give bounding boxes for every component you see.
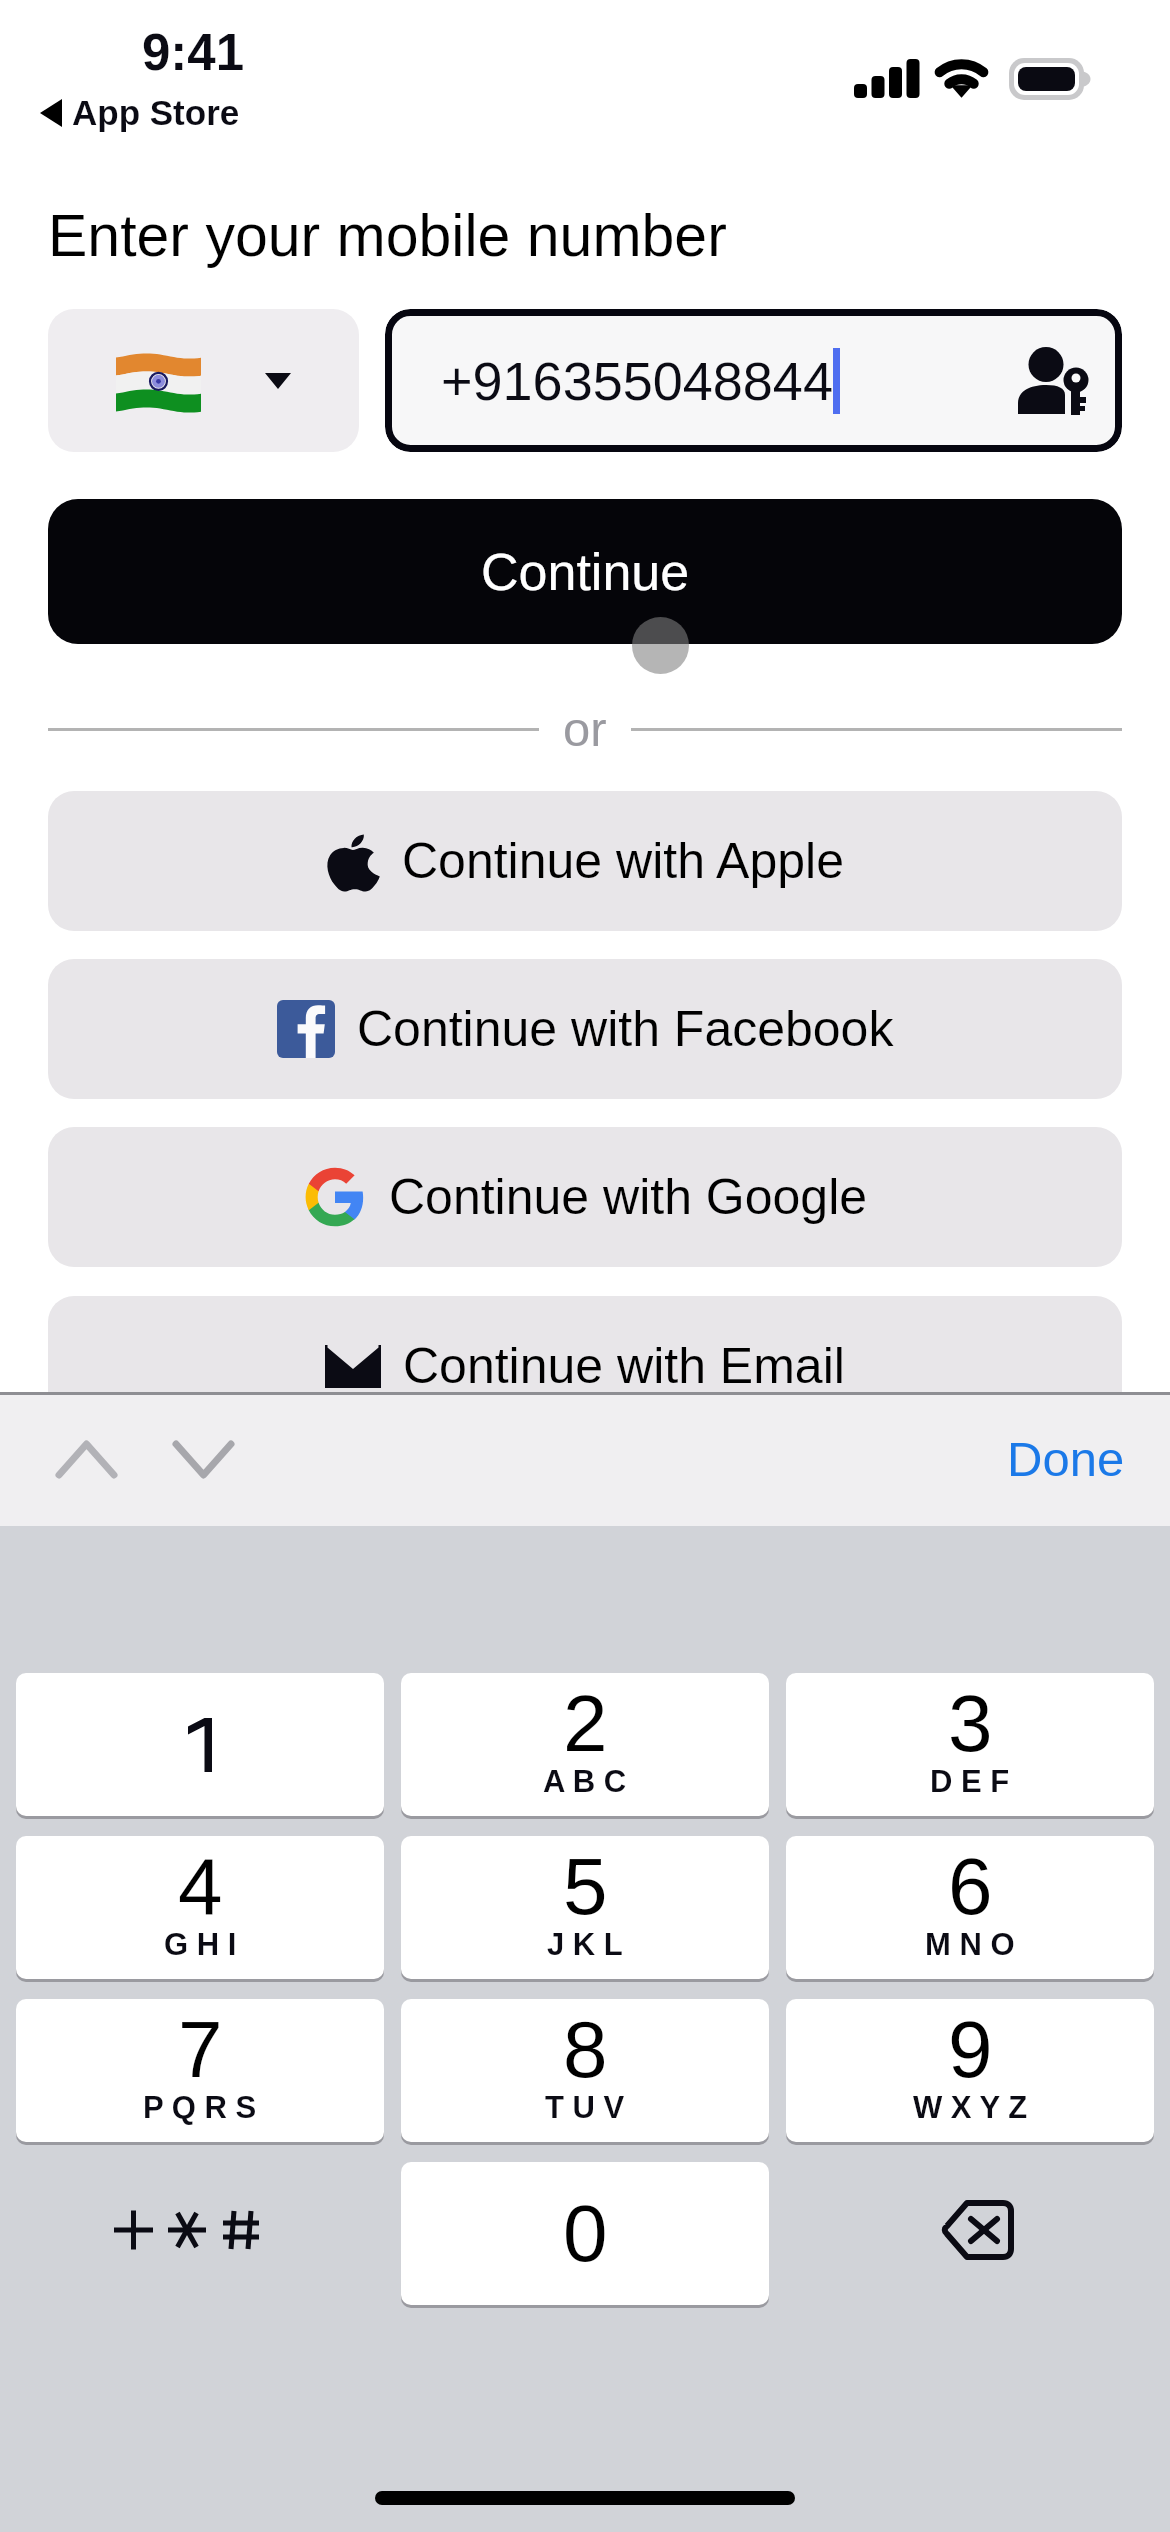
- staticText: M N O: [925, 1927, 1015, 1962]
- staticText: 4: [178, 1842, 223, 1931]
- staticText: Enter your mobile number: [48, 203, 727, 269]
- staticText: Done: [1007, 1432, 1125, 1487]
- staticText: W X Y Z: [913, 2090, 1028, 2125]
- button[interactable]: Continue with Email: [48, 1296, 1122, 1436]
- staticText: +916355048844: [441, 351, 833, 411]
- button[interactable]: Symbols: [16, 2162, 384, 2305]
- staticText: G H I: [164, 1927, 237, 1962]
- staticText: 7: [178, 2005, 223, 2094]
- button[interactable]: Next field: [161, 1417, 246, 1501]
- staticText: T U V: [545, 2090, 625, 2125]
- staticText: 9:41: [142, 24, 245, 81]
- staticText: 9: [948, 2005, 993, 2094]
- staticText: Continue with Facebook: [357, 1001, 894, 1057]
- button[interactable]: 5: [401, 1836, 769, 1979]
- button[interactable]: Continue: [48, 499, 1122, 644]
- staticText: A B C: [543, 1764, 627, 1799]
- button[interactable]: 2: [401, 1673, 769, 1816]
- button[interactable]: 7: [16, 1999, 384, 2142]
- button[interactable]: Continue with Google: [48, 1127, 1122, 1267]
- staticText: 0: [563, 2189, 608, 2278]
- staticText: P Q R S: [143, 2090, 257, 2125]
- staticText: 3: [948, 1679, 993, 1768]
- button[interactable]: 8: [401, 1999, 769, 2142]
- button[interactable]: Previous field: [44, 1417, 129, 1501]
- staticText: 2: [563, 1679, 608, 1768]
- staticText: Continue with Apple: [402, 833, 844, 889]
- staticText: 5: [563, 1842, 608, 1931]
- staticText: J K L: [547, 1927, 623, 1962]
- button[interactable]: 3: [786, 1673, 1154, 1816]
- staticText: Continue with Google: [389, 1169, 868, 1225]
- button[interactable]: Backspace: [786, 2162, 1154, 2305]
- staticText: Continue with Email: [403, 1338, 845, 1394]
- button[interactable]: 6: [786, 1836, 1154, 1979]
- staticText: or: [563, 702, 607, 757]
- staticText: 6: [948, 1842, 993, 1931]
- staticText: D E F: [930, 1764, 1010, 1799]
- button[interactable]: 4: [16, 1836, 384, 1979]
- button[interactable]: Done: [998, 1414, 1126, 1505]
- button[interactable]: 9: [786, 1999, 1154, 2142]
- staticText: 8: [563, 2005, 608, 2094]
- button[interactable]: Continue with Facebook: [48, 959, 1122, 1099]
- button[interactable]: +916355048844: [385, 309, 1122, 452]
- staticText: Continue: [481, 543, 690, 601]
- button[interactable]: 0: [401, 2162, 769, 2305]
- staticText: App Store: [72, 93, 240, 132]
- button[interactable]: [16, 1673, 384, 1816]
- button[interactable]: Continue with Apple: [48, 791, 1122, 931]
- button[interactable]: Select country code: [48, 309, 359, 452]
